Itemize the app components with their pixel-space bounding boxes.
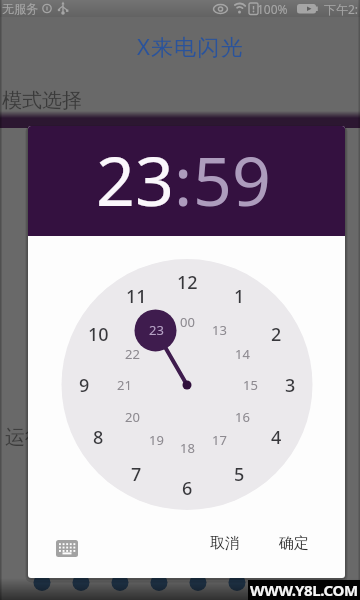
staticText: 下午2: xyxy=(324,1,359,17)
staticText: 9 xyxy=(79,373,90,397)
staticText: 5 xyxy=(234,462,245,486)
staticText: 7 xyxy=(131,462,142,486)
staticText: 6 xyxy=(182,476,193,500)
staticText: 8 xyxy=(93,425,104,449)
staticText: 11 xyxy=(126,284,147,308)
staticText: 00 xyxy=(180,313,195,331)
staticText: 18 xyxy=(180,439,195,457)
staticText: 21 xyxy=(117,376,132,394)
staticText: 10 xyxy=(88,322,109,346)
staticText: 14 xyxy=(235,345,250,363)
staticText: 运行时间 xyxy=(5,425,85,449)
button[interactable] xyxy=(45,530,89,566)
staticText: 13 xyxy=(212,321,227,339)
button[interactable]: 确定 xyxy=(266,526,322,560)
staticText: 23 xyxy=(149,321,164,339)
staticText: : xyxy=(174,133,193,226)
staticText: 3 xyxy=(285,373,296,397)
staticText: 15 xyxy=(243,376,258,394)
staticText: 4 xyxy=(271,425,282,449)
staticText: 12 xyxy=(177,270,198,294)
staticText: 20 xyxy=(125,408,140,426)
staticText: 16 xyxy=(235,408,250,426)
staticText: 无服务 xyxy=(2,1,38,16)
staticText: WWW.Y8L.COM xyxy=(250,580,358,600)
button[interactable]: 59 xyxy=(193,133,271,226)
staticText: 100% xyxy=(257,1,288,17)
staticText: 确定 xyxy=(279,534,309,553)
staticText: 19 xyxy=(149,431,164,449)
button[interactable]: 23 xyxy=(96,133,174,226)
staticText: 1 xyxy=(234,284,245,308)
staticText: 2 xyxy=(271,322,282,346)
staticText: 17 xyxy=(212,431,227,449)
staticText: 模式选择 xyxy=(2,88,82,112)
staticText: X来电闪光 xyxy=(137,31,244,59)
staticText: 22 xyxy=(125,345,140,363)
staticText: 取消 xyxy=(210,534,240,553)
button[interactable]: 取消 xyxy=(197,526,253,560)
